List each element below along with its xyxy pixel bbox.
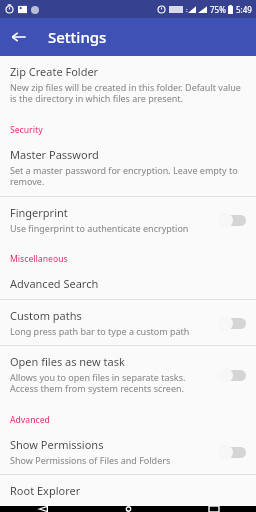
staticText: Zip Create Folder — [10, 64, 99, 79]
button[interactable]: Back — [0, 18, 38, 56]
button[interactable]: Toggle Custom paths — [218, 315, 248, 331]
button[interactable]: Advanced Search — [0, 268, 256, 299]
staticText: Set a master password for encryption. Le… — [10, 164, 248, 188]
staticText: Allows you to open files in separate tas… — [10, 371, 210, 395]
button[interactable]: Toggle Open files as new task — [218, 367, 248, 383]
staticText: Custom paths — [10, 308, 82, 323]
staticText: Root Explorer — [10, 483, 81, 498]
button[interactable]: Fingerprint — [0, 197, 256, 242]
button[interactable]: Zip Create Folder — [0, 56, 256, 113]
staticText: Show Permissions of Files and Folders — [10, 454, 171, 466]
button[interactable]: Home — [86, 506, 171, 512]
staticText: Settings — [48, 27, 107, 47]
staticText: Long press path bar to type a custom pat… — [10, 325, 190, 337]
staticText: 5:49 — [236, 4, 252, 15]
staticText: New zip files will be created in this fo… — [10, 81, 248, 105]
staticText: Open files as new task — [10, 354, 125, 369]
staticText: Advanced Search — [10, 276, 99, 291]
staticText: : — [186, 6, 188, 14]
staticText: 75% — [210, 4, 226, 15]
staticText: Master Password — [10, 147, 99, 162]
button[interactable]: Back — [0, 506, 86, 512]
button[interactable]: Toggle Show Permissions — [218, 444, 248, 460]
button[interactable]: Show Permissions — [0, 429, 256, 474]
staticText: Advanced — [10, 414, 50, 426]
staticText: Miscellaneous — [10, 253, 68, 265]
button[interactable]: Custom paths — [0, 300, 256, 345]
button[interactable]: Toggle Fingerprint — [218, 212, 248, 228]
button[interactable]: Root Explorer — [0, 475, 256, 506]
button[interactable]: Open files as new task — [0, 346, 256, 403]
staticText: Show Permissions — [10, 437, 104, 452]
button[interactable]: Recent apps — [171, 506, 256, 512]
staticText: Fingerprint — [10, 205, 68, 220]
button[interactable]: Master Password — [0, 139, 256, 196]
staticText: Use fingerprint to authenticate encrypti… — [10, 222, 189, 234]
staticText: Security — [10, 124, 43, 136]
